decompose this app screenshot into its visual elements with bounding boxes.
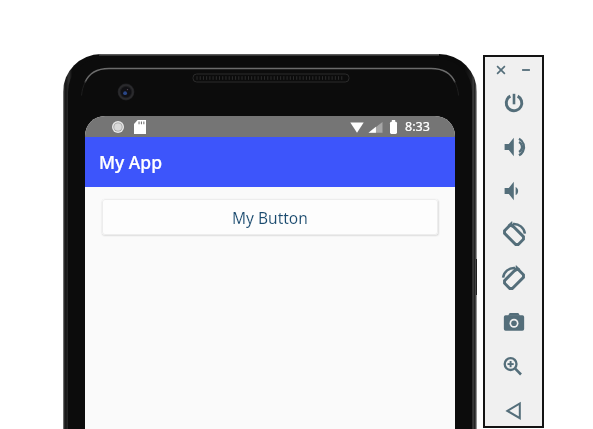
button[interactable]: Rotate right xyxy=(499,264,529,294)
button[interactable]: Zoom xyxy=(499,352,529,382)
button[interactable]: Volume down xyxy=(499,176,529,206)
button[interactable]: My App xyxy=(85,137,455,187)
button[interactable]: Screenshot xyxy=(499,308,529,338)
button[interactable]: Back xyxy=(499,396,529,426)
staticText: 8:33 xyxy=(405,118,430,135)
button[interactable]: Power xyxy=(499,88,529,118)
staticText: My App xyxy=(99,150,163,174)
button[interactable]: Close xyxy=(486,55,516,85)
button[interactable]: My Button xyxy=(102,199,438,235)
staticText: My Button xyxy=(232,207,308,228)
button[interactable]: Volume up xyxy=(499,132,529,162)
button[interactable]: Rotate left xyxy=(499,220,529,250)
button[interactable]: Minimize xyxy=(511,55,541,85)
